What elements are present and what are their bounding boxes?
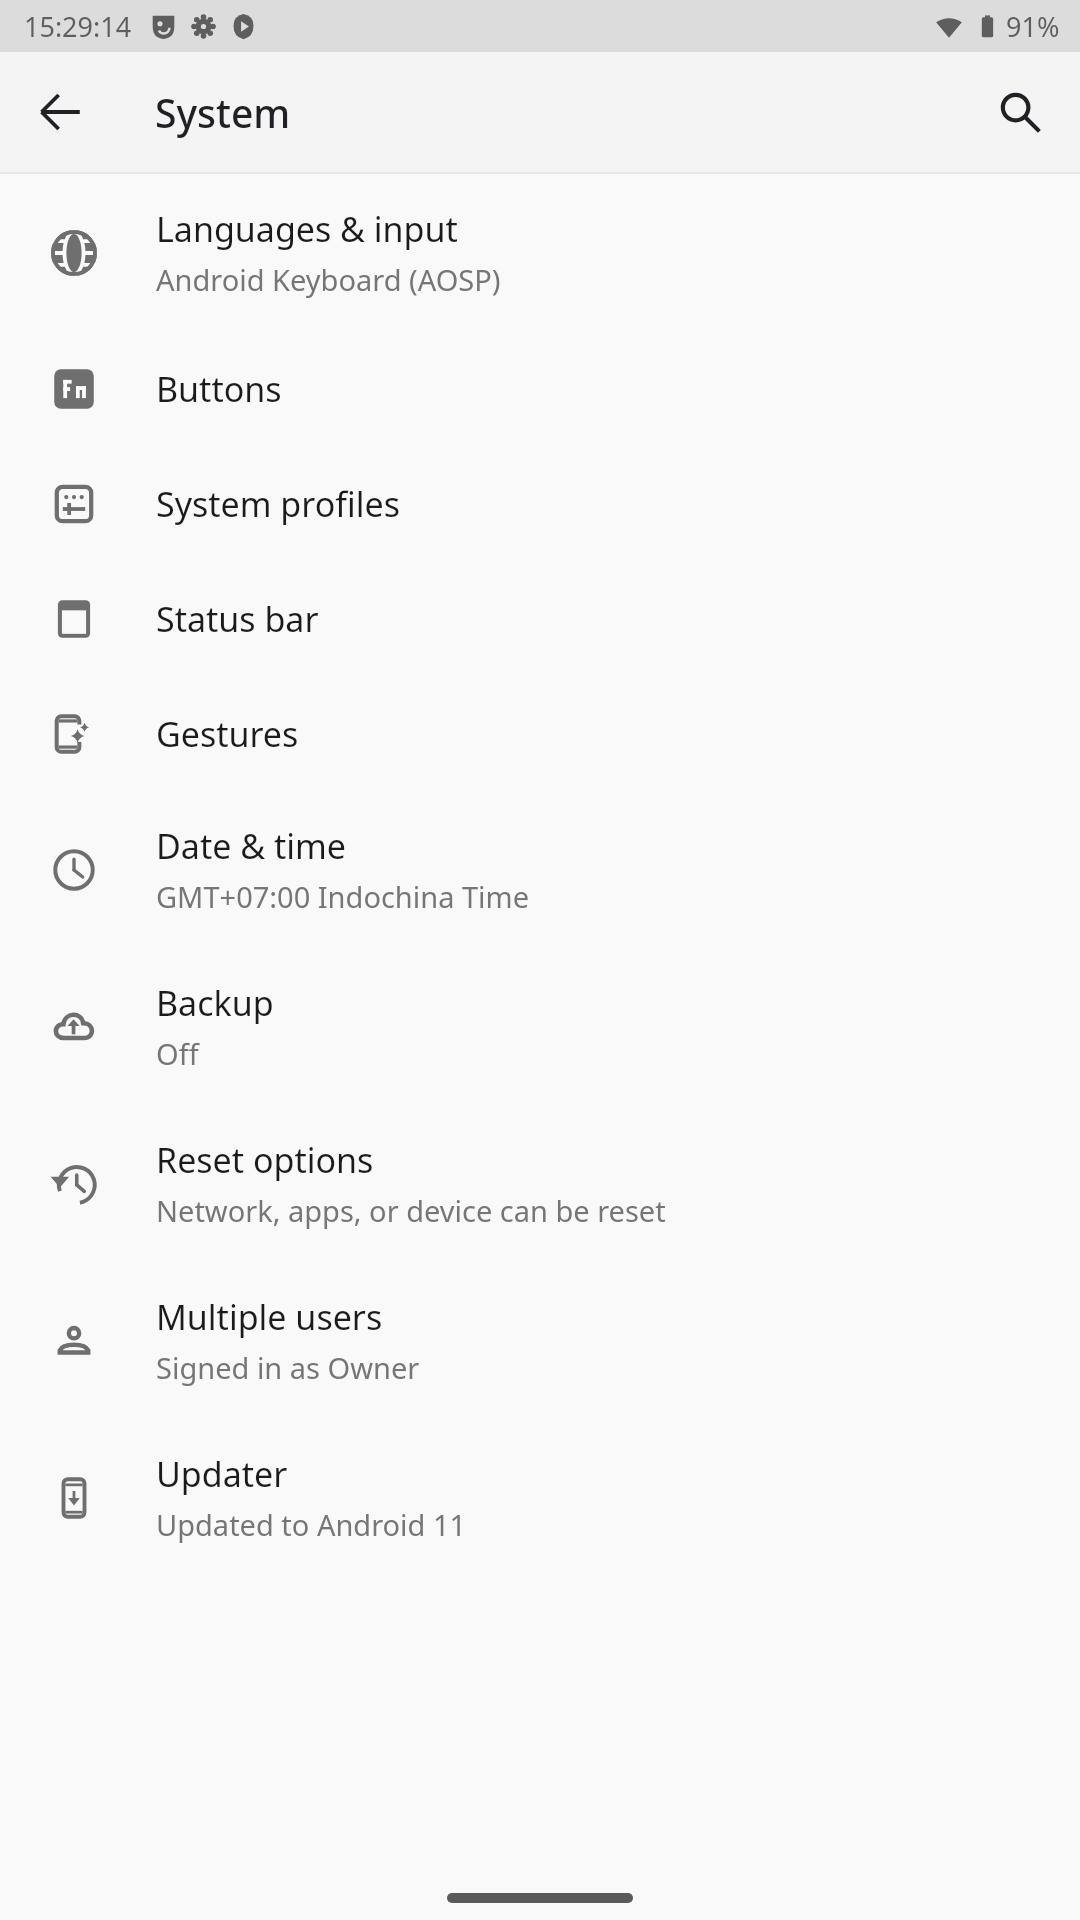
staticText: Reset options <box>156 1137 374 1183</box>
staticText: Android Keyboard (AOSP) <box>156 260 501 299</box>
button[interactable]: Multiple users <box>0 1262 1080 1419</box>
staticText: Off <box>156 1034 199 1073</box>
button[interactable]: Languages & input <box>0 174 1080 331</box>
button[interactable]: Search <box>978 70 1062 154</box>
staticText: Languages & input <box>156 206 458 252</box>
staticText: Updated to Android 11 <box>156 1505 467 1544</box>
button[interactable]: Updater <box>0 1419 1080 1576</box>
button[interactable]: Gestures <box>0 676 1080 791</box>
button[interactable]: Buttons <box>0 331 1080 446</box>
staticText: Status bar <box>156 596 319 642</box>
staticText: Buttons <box>156 366 282 412</box>
staticText: Gestures <box>156 711 299 757</box>
staticText: Backup <box>156 980 274 1026</box>
staticText: 15:29:14 <box>24 8 132 45</box>
button[interactable]: Date & time <box>0 791 1080 948</box>
staticText: Multiple users <box>156 1294 383 1340</box>
staticText: Date & time <box>156 823 346 869</box>
button[interactable]: Backup <box>0 948 1080 1105</box>
staticText: Network, apps, or device can be reset <box>156 1191 666 1230</box>
staticText: System <box>155 86 291 139</box>
button[interactable]: System profiles <box>0 446 1080 561</box>
staticText: Signed in as Owner <box>156 1348 420 1387</box>
staticText: 91% <box>1006 8 1060 45</box>
button[interactable]: Reset options <box>0 1105 1080 1262</box>
staticText: Updater <box>156 1451 288 1497</box>
button[interactable]: Back <box>18 70 102 154</box>
staticText: GMT+07:00 Indochina Time <box>156 877 530 916</box>
button[interactable]: Status bar <box>0 561 1080 676</box>
staticText: System profiles <box>156 481 400 527</box>
